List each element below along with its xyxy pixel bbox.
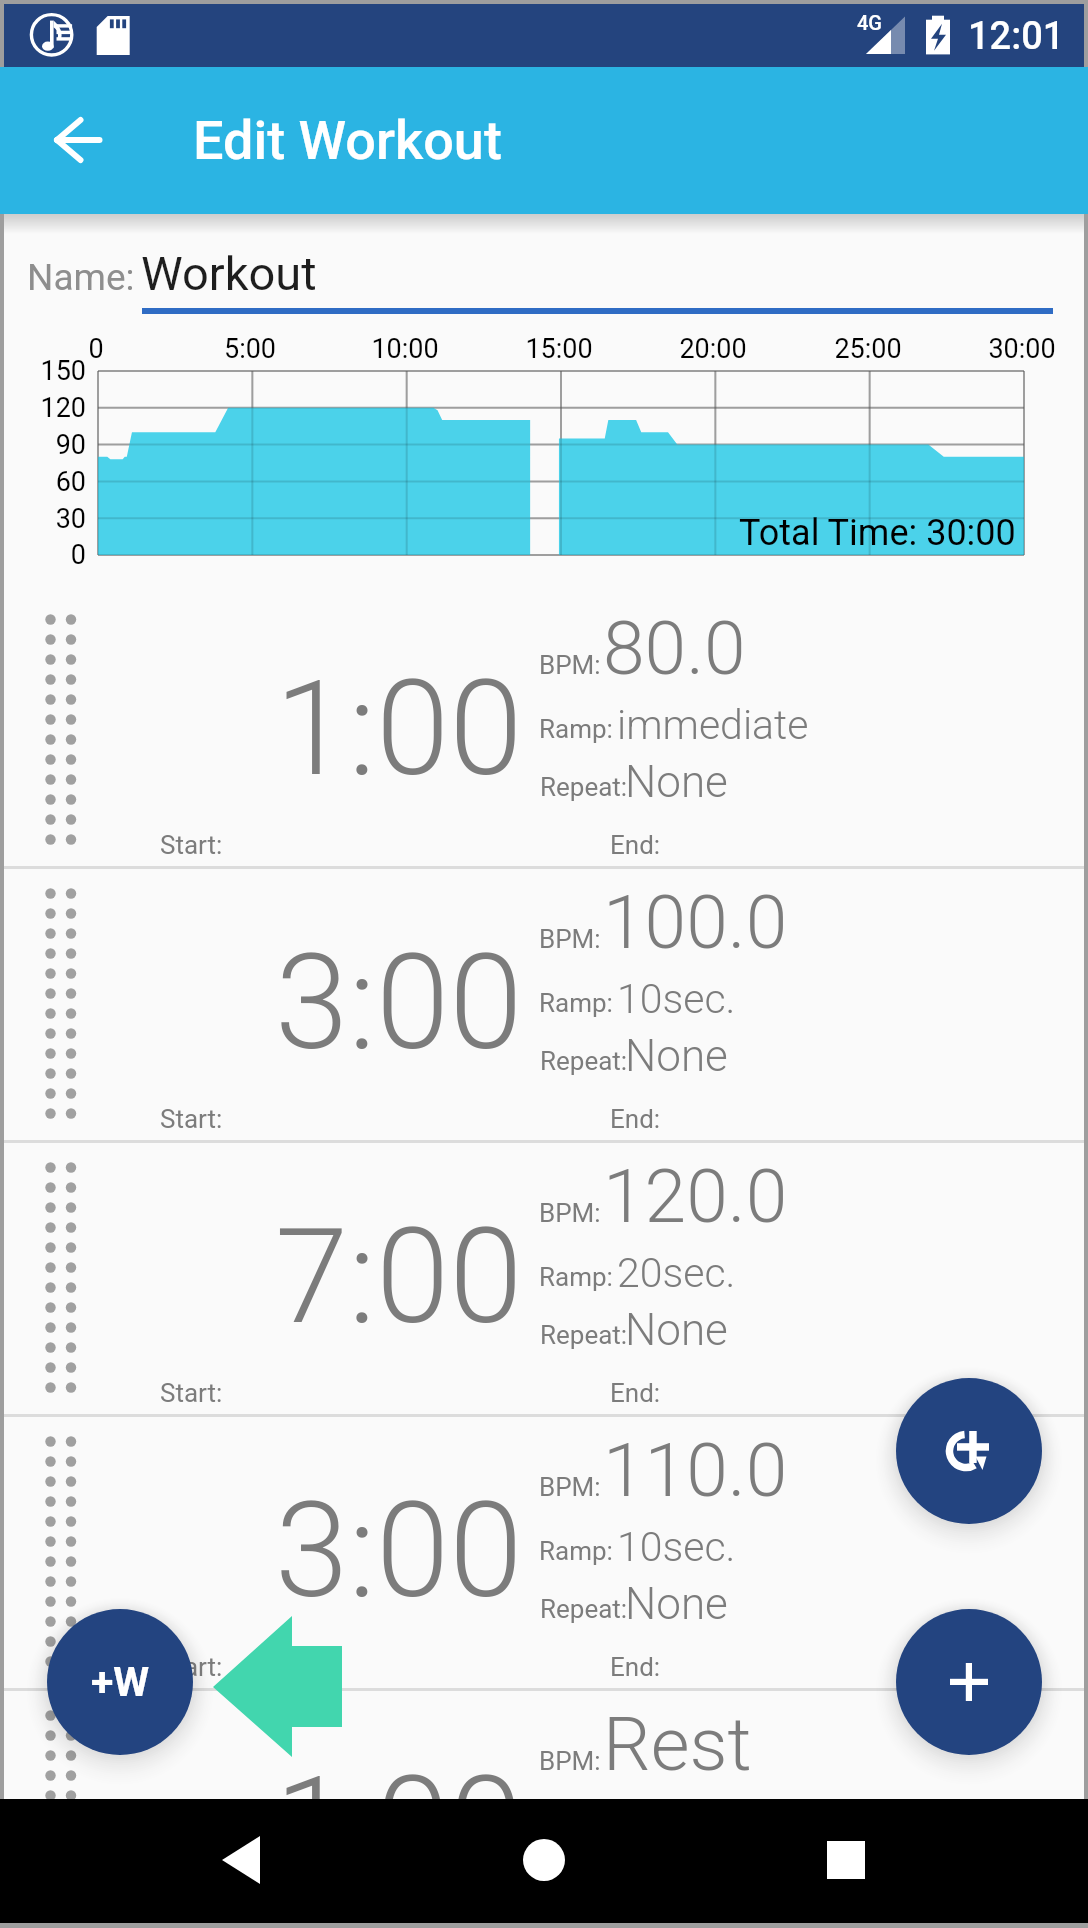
staticText: Start: [160, 1652, 223, 1682]
staticText: End: [610, 1104, 661, 1134]
staticText: 1:00 [275, 1748, 523, 1799]
staticText: Repeat: [540, 1046, 628, 1076]
staticText: 3:00 [275, 926, 523, 1081]
staticText: BPM: [539, 1746, 601, 1776]
staticText: Ramp: [539, 1262, 613, 1292]
staticText: Repeat: [540, 1320, 628, 1350]
staticText: +W [91, 1658, 150, 1706]
button[interactable]: Navigate up [36, 99, 120, 183]
staticText: 4G [857, 11, 882, 34]
staticText: Ramp: [539, 714, 613, 744]
button[interactable]: 3:00 [4, 1414, 1084, 1688]
staticText: 1:00 [275, 652, 523, 807]
staticText: Ramp: [539, 1536, 613, 1566]
staticText: 3:00 [275, 1474, 523, 1629]
staticText: Total Time: 30:00 [739, 512, 1016, 554]
staticText: 150 [4, 355, 86, 387]
button[interactable]: 3:00 [4, 866, 1084, 1140]
button[interactable]: 1:00 [4, 1688, 1084, 1799]
staticText: BPM: [539, 1472, 601, 1502]
staticText: Name: [27, 256, 135, 299]
staticText: 120 [4, 392, 86, 424]
staticText: End: [610, 1378, 661, 1408]
staticText: 30 [4, 503, 86, 535]
staticText: None [625, 1030, 728, 1082]
staticText: 0 [4, 539, 86, 571]
staticText: None [625, 1304, 728, 1356]
staticText: 80.0 [603, 604, 746, 692]
staticText: BPM: [539, 650, 601, 680]
staticText: 100.0 [603, 878, 788, 966]
staticText: 25:00 [778, 333, 958, 365]
staticText: BPM: [539, 924, 601, 954]
staticText: Edit Workout [193, 109, 502, 172]
staticText: 15:00 [469, 333, 649, 365]
button[interactable]: Add workout [47, 1609, 193, 1755]
button[interactable]: 7:00 [4, 1140, 1084, 1414]
staticText: 10:00 [315, 333, 495, 365]
staticText: None [625, 1578, 728, 1630]
staticText: 20sec. [617, 1249, 736, 1297]
button[interactable]: Add repeat [896, 1378, 1042, 1524]
staticText: 20:00 [623, 333, 803, 365]
staticText: 60 [4, 466, 86, 498]
staticText: Workout [141, 246, 317, 301]
staticText: Rest [603, 1700, 752, 1788]
staticText: Start: [160, 830, 223, 860]
staticText: Ramp: [539, 988, 613, 1018]
staticText: End: [610, 830, 661, 860]
staticText: Start: [160, 1378, 223, 1408]
staticText: immediate [617, 701, 809, 749]
staticText: Repeat: [540, 772, 628, 802]
staticText: 120.0 [603, 1152, 788, 1240]
staticText: Repeat: [540, 1594, 628, 1624]
staticText: End: [610, 1652, 661, 1682]
staticText: 90 [4, 429, 86, 461]
staticText: 12:01 [968, 14, 1065, 59]
staticText: 10sec. [617, 1523, 736, 1571]
button[interactable]: Back [166, 1799, 316, 1923]
button[interactable]: Recent apps [771, 1799, 921, 1923]
staticText: 0 [6, 333, 186, 365]
staticText: Start: [160, 1104, 223, 1134]
staticText: 30:00 [932, 333, 1084, 365]
staticText: 7:00 [275, 1200, 523, 1355]
staticText: 5:00 [160, 333, 340, 365]
staticText: 10sec. [617, 975, 736, 1023]
staticText: None [625, 756, 728, 808]
staticText: 110.0 [603, 1426, 788, 1514]
button[interactable]: Add step [896, 1609, 1042, 1755]
staticText: BPM: [539, 1198, 601, 1228]
button[interactable]: 1:00 [4, 592, 1084, 866]
button[interactable]: Home [469, 1799, 619, 1923]
